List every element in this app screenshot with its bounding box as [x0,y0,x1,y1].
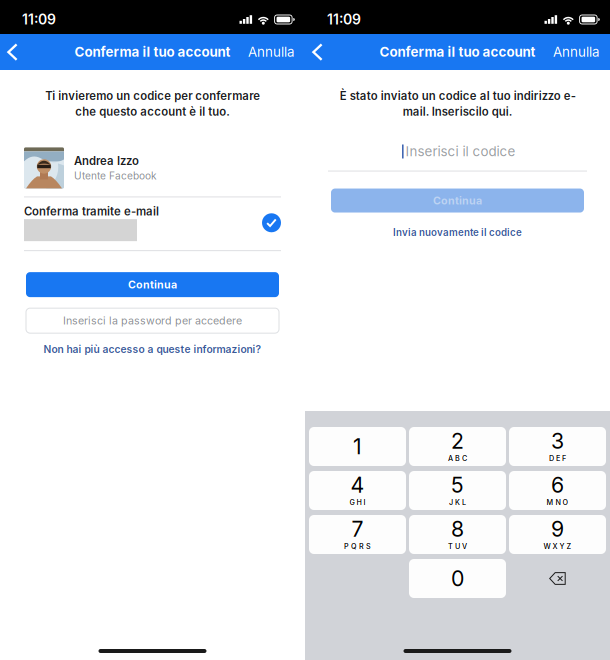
staticText: T U V [448,542,467,551]
button[interactable]: Delete [509,560,606,596]
button[interactable]: 6 [509,471,606,510]
staticText: M N O [546,498,568,507]
button[interactable]: Conferma tramite e-mail [0,197,305,250]
staticText: Ti invieremo un codice per confermare ch… [45,89,260,118]
staticText: J K L [449,498,466,507]
staticText: 1 [353,434,362,459]
staticText: Annulla [248,44,294,60]
staticText: A B C [448,454,467,463]
staticText: Utente Facebook [74,170,157,182]
button[interactable]: 3 [509,427,606,466]
button[interactable]: 1 [309,427,406,466]
staticText: 4 [350,472,364,498]
staticText: 11:09 [22,11,56,28]
staticText: Continua [128,278,177,291]
staticText: 2 [451,428,464,454]
staticText: 9 [551,516,564,542]
staticText: G H I [349,498,365,507]
staticText: 5 [451,472,464,498]
button[interactable]: Continua [26,272,279,297]
staticText: Invia nuovamente il codice [393,227,522,238]
button[interactable]: Back [305,34,336,70]
button[interactable]: 4 [309,471,406,510]
staticText: Andrea Izzo [74,154,139,168]
button[interactable]: 8 [409,515,506,554]
staticText: Annulla [553,44,599,60]
staticText: È stato inviato un codice al tuo indiriz… [339,89,575,118]
staticText: Continua [433,194,482,207]
button[interactable]: Invia nuovamente il codice [393,224,522,241]
staticText: Conferma il tuo account [379,44,535,60]
button[interactable]: Annulla [553,34,610,70]
button[interactable]: Back [0,34,31,70]
button[interactable]: Annulla [248,34,305,70]
staticText: 3 [551,428,564,454]
staticText: P Q R S [344,542,371,551]
staticText: Conferma il tuo account [74,44,230,60]
staticText: Conferma tramite e-mail [24,204,159,218]
staticText: Inserisci il codice [406,143,516,159]
staticText: D E F [549,454,566,463]
staticText: 11:09 [327,11,361,28]
button[interactable]: 9 [509,515,606,554]
button[interactable]: 0 [409,559,506,598]
staticText: Non hai più accesso a queste informazion… [43,343,261,355]
staticText: 0 [451,566,464,591]
button[interactable]: Non hai più accesso a queste informazion… [43,340,261,358]
button[interactable]: Inserisci la password per accedere [26,308,279,333]
staticText: 7 [351,516,363,542]
staticText: 6 [551,472,564,498]
staticText: 8 [451,516,464,542]
staticText: W X Y Z [543,542,571,551]
button[interactable]: 5 [409,471,506,510]
button[interactable]: 7 [309,515,406,554]
staticText: Inserisci la password per accedere [63,314,242,327]
button[interactable]: Continua [331,189,584,213]
button[interactable]: 2 [409,427,506,466]
